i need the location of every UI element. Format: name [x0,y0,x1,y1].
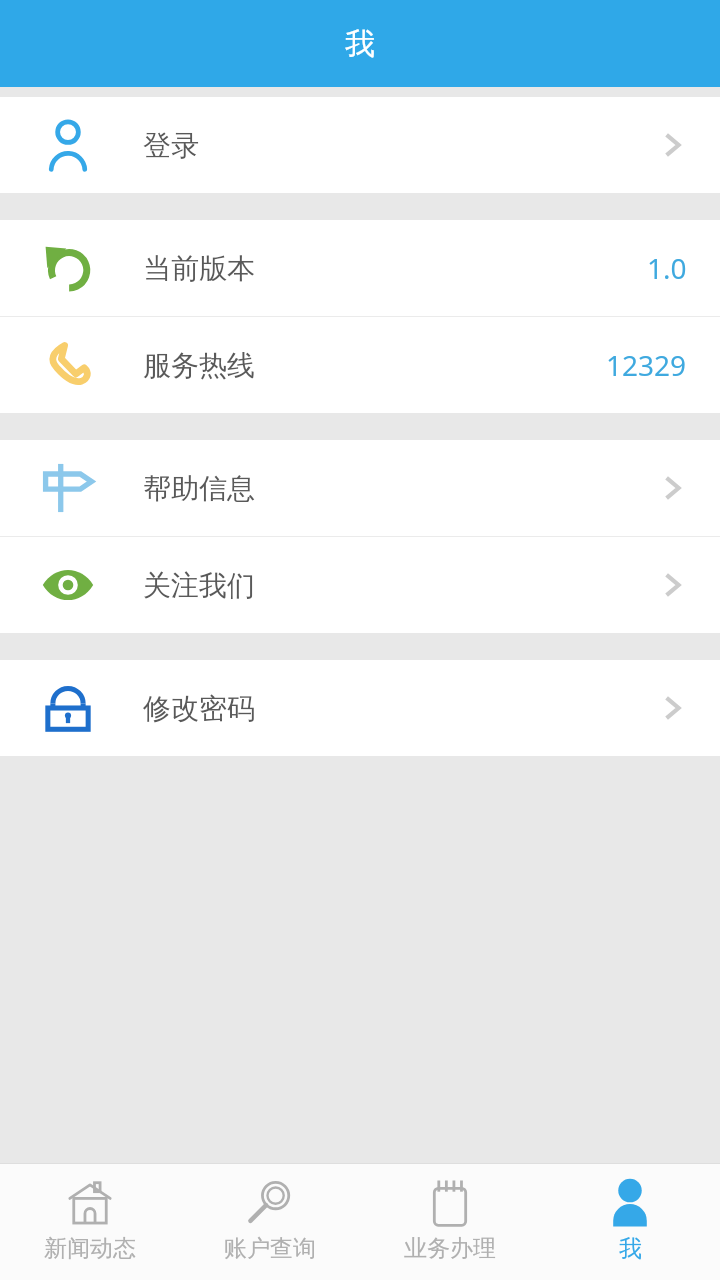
other: 打开 关注我们 [657,570,687,600]
button[interactable]: 服务热线 [0,317,720,413]
staticText: 业务办理 [404,1234,496,1263]
staticText: 关注我们 [143,568,255,603]
staticText: 新闻动态 [44,1234,136,1263]
staticText: 登录 [143,128,199,163]
button[interactable]: 新闻动态 [0,1164,180,1280]
button[interactable]: 业务办理 [360,1164,540,1280]
button[interactable]: 修改密码 [0,660,720,756]
button[interactable]: 我 [540,1164,720,1280]
staticText: 账户查询 [224,1234,316,1263]
other: 打开 修改密码 [657,693,687,723]
staticText: 当前版本 [143,251,255,286]
button[interactable]: 关注我们 [0,537,720,633]
staticText: 帮助信息 [143,471,255,506]
staticText: 12329 [606,346,687,384]
button[interactable]: 当前版本 [0,220,720,316]
staticText: 修改密码 [143,691,255,726]
button[interactable]: 账户查询 [180,1164,360,1280]
other: 打开 帮助信息 [657,473,687,503]
other: 打开 登录 [657,130,687,160]
button[interactable]: 登录 [0,97,720,193]
staticText: 1.0 [647,249,687,287]
staticText: 我 [345,25,375,63]
staticText: 服务热线 [143,348,255,383]
staticText: 我 [619,1234,642,1263]
button[interactable]: 帮助信息 [0,440,720,536]
